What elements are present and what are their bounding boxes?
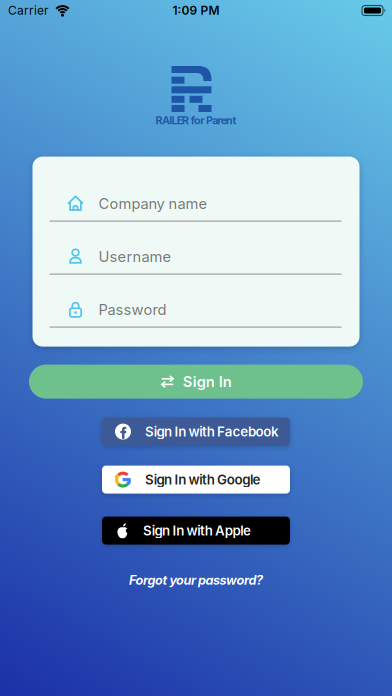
button[interactable]: Forgot your password? — [129, 573, 263, 588]
staticText: Forgot your password? — [129, 573, 263, 588]
button[interactable]: Company name — [32, 169, 359, 222]
staticText: Sign In — [183, 373, 232, 390]
staticText: 1:09 PM — [172, 3, 219, 18]
button[interactable]: Sign In with Google — [102, 466, 290, 494]
staticText: Password — [98, 301, 166, 318]
button[interactable]: Sign In with Facebook — [102, 418, 290, 446]
staticText: Sign In with Facebook — [145, 424, 279, 439]
button[interactable]: Sign In with Apple — [102, 517, 290, 545]
staticText: Carrier — [8, 3, 49, 18]
button[interactable]: Sign In — [29, 365, 363, 399]
staticText: Sign In with Google — [145, 472, 261, 487]
staticText: RAILER for Parent — [156, 114, 236, 127]
staticText: Username — [98, 248, 171, 265]
button[interactable]: Username — [32, 222, 359, 275]
button[interactable]: Password — [32, 275, 359, 328]
staticText: Company name — [98, 195, 207, 212]
staticText: Sign In with Apple — [143, 523, 251, 538]
